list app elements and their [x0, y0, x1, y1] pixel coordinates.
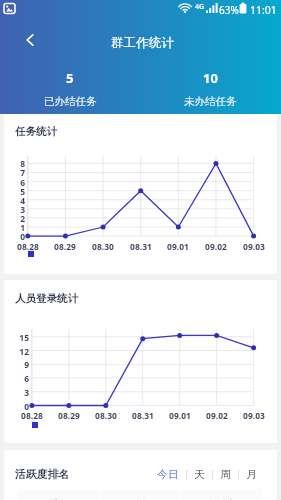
staticText: 0 — [5, 231, 25, 243]
staticText: 12 — [9, 346, 29, 358]
staticText: 6 — [9, 373, 29, 385]
staticText: 08.30 — [86, 241, 120, 253]
staticText: 今日 — [157, 468, 179, 482]
staticText: 08.29 — [48, 241, 82, 253]
button[interactable]: 周 — [213, 459, 238, 481]
staticText: 4 — [5, 195, 25, 207]
staticText: 0 — [9, 401, 29, 413]
button[interactable]: 今日 — [150, 459, 186, 481]
staticText: 09.03 — [237, 241, 271, 253]
staticText: 08.31 — [126, 410, 160, 422]
staticText: 5 — [66, 69, 74, 87]
staticText: 3 — [9, 387, 29, 399]
staticText: 3 — [5, 204, 25, 216]
staticText: 08.31 — [124, 241, 158, 253]
staticText: 人员登录统计 — [15, 292, 78, 305]
button[interactable]: 10 — [140, 69, 281, 108]
staticText: 任务统计 — [15, 125, 57, 138]
staticText: 9 — [9, 359, 29, 371]
staticText: 09.01 — [161, 241, 195, 253]
staticText: 08.30 — [89, 410, 123, 422]
staticText: 5 — [5, 186, 25, 198]
staticText: 09.02 — [199, 241, 233, 253]
staticText: 10 — [203, 69, 218, 87]
staticText: 姓名 — [131, 498, 149, 500]
staticText: 排名 — [50, 498, 68, 500]
staticText: 1 — [5, 222, 25, 234]
staticText: 7 — [5, 167, 25, 179]
staticText: 未办结任务 — [184, 95, 237, 108]
staticText: 已办结任务 — [44, 95, 97, 108]
button[interactable]: Back — [16, 26, 44, 54]
staticText: 09.02 — [200, 410, 234, 422]
staticText: 15 — [9, 332, 29, 344]
staticText: 08.29 — [52, 410, 86, 422]
staticText: 11:01 — [250, 3, 277, 17]
staticText: 2 — [5, 213, 25, 225]
staticText: 09.01 — [163, 410, 197, 422]
staticText: 月 — [246, 468, 257, 482]
staticText: 活跃度排名 — [15, 468, 69, 482]
button[interactable]: 月 — [239, 459, 264, 481]
staticText: 8 — [5, 158, 25, 170]
staticText: 08.28 — [11, 241, 45, 253]
button[interactable]: 5 — [0, 69, 140, 108]
staticText: 活跃度 — [208, 498, 235, 500]
staticText: 群工作统计 — [111, 35, 174, 51]
staticText: 63% — [219, 3, 239, 17]
button[interactable]: 天 — [187, 459, 212, 481]
staticText: 08.28 — [15, 410, 49, 422]
staticText: 4G — [195, 2, 205, 12]
staticText: 6 — [5, 177, 25, 189]
staticText: 天 — [194, 468, 205, 482]
staticText: 09.03 — [237, 410, 271, 422]
staticText: 周 — [220, 468, 231, 482]
